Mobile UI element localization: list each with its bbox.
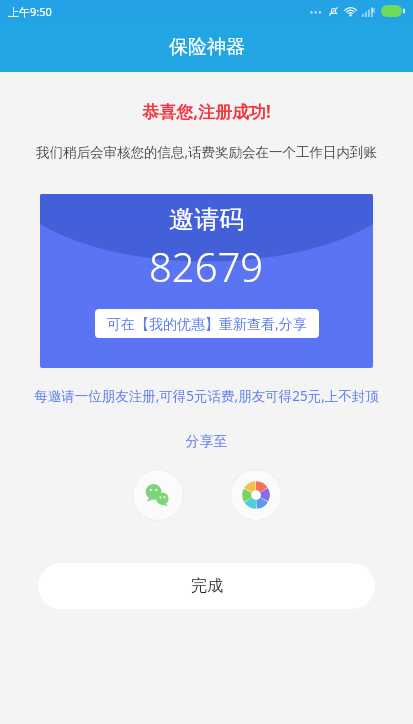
staticText: 82679 xyxy=(149,239,264,293)
staticText: 完成 xyxy=(191,576,223,596)
staticText: 每邀请一位朋友注册,可得5元话费,朋友可得25元,上不封顶 xyxy=(18,387,395,405)
button[interactable]: Share to WeChat xyxy=(132,469,184,521)
staticText: 邀请码 xyxy=(169,204,244,235)
staticText: 分享至 xyxy=(0,433,413,451)
staticText: 上午9:50 xyxy=(8,4,52,19)
staticText: 可在【我的优惠】重新查看,分享 xyxy=(107,314,307,333)
staticText: 保险神器 xyxy=(169,35,245,59)
button[interactable]: 可在【我的优惠】重新查看,分享 xyxy=(95,309,319,338)
staticText: 恭喜您,注册成功! xyxy=(0,100,413,123)
staticText: 我们稍后会审核您的信息,话费奖励会在一个工作日内到账 xyxy=(16,143,397,161)
button[interactable]: 完成 xyxy=(38,563,375,609)
button[interactable]: Share to Moments xyxy=(230,469,282,521)
